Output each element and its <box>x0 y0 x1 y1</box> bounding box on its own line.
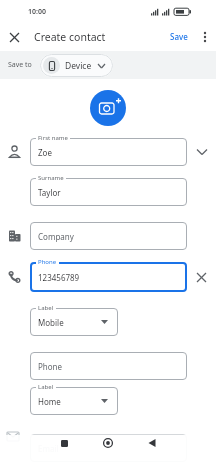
button[interactable]: Phone <box>30 352 187 380</box>
staticText: Company <box>38 231 74 242</box>
staticText: Label <box>38 304 54 312</box>
button[interactable]: Company <box>30 222 187 250</box>
button[interactable]: Mobile <box>30 308 118 336</box>
staticText: Phone <box>38 258 57 266</box>
staticText: Mobile <box>38 317 64 328</box>
button[interactable] <box>6 29 23 46</box>
button[interactable] <box>187 262 216 292</box>
staticText: First name <box>38 134 68 142</box>
staticText: Taylor <box>38 187 61 198</box>
staticText: Phone <box>38 361 63 372</box>
button[interactable]: Taylor <box>30 178 187 206</box>
staticText: 10:00 <box>28 7 46 17</box>
button[interactable] <box>92 435 124 451</box>
button[interactable]: Save <box>170 31 188 42</box>
staticText: Create contact <box>34 30 106 44</box>
button[interactable]: Zoe <box>30 138 187 166</box>
staticText: Label <box>38 383 54 391</box>
staticText: Save <box>170 31 188 42</box>
button[interactable] <box>48 435 80 451</box>
staticText: Surname <box>38 174 64 182</box>
button[interactable] <box>90 90 126 126</box>
staticText: Home <box>38 396 61 407</box>
staticText: Zoe <box>38 147 52 158</box>
staticText: Save to <box>8 60 32 70</box>
staticText: 123456789 <box>38 272 80 283</box>
button[interactable]: Device <box>40 54 113 77</box>
button[interactable]: Home <box>30 387 118 415</box>
button[interactable]: 123456789 <box>30 262 187 292</box>
button[interactable] <box>136 435 168 451</box>
staticText: Device <box>65 60 92 72</box>
button[interactable] <box>187 138 216 166</box>
button[interactable] <box>198 30 212 44</box>
